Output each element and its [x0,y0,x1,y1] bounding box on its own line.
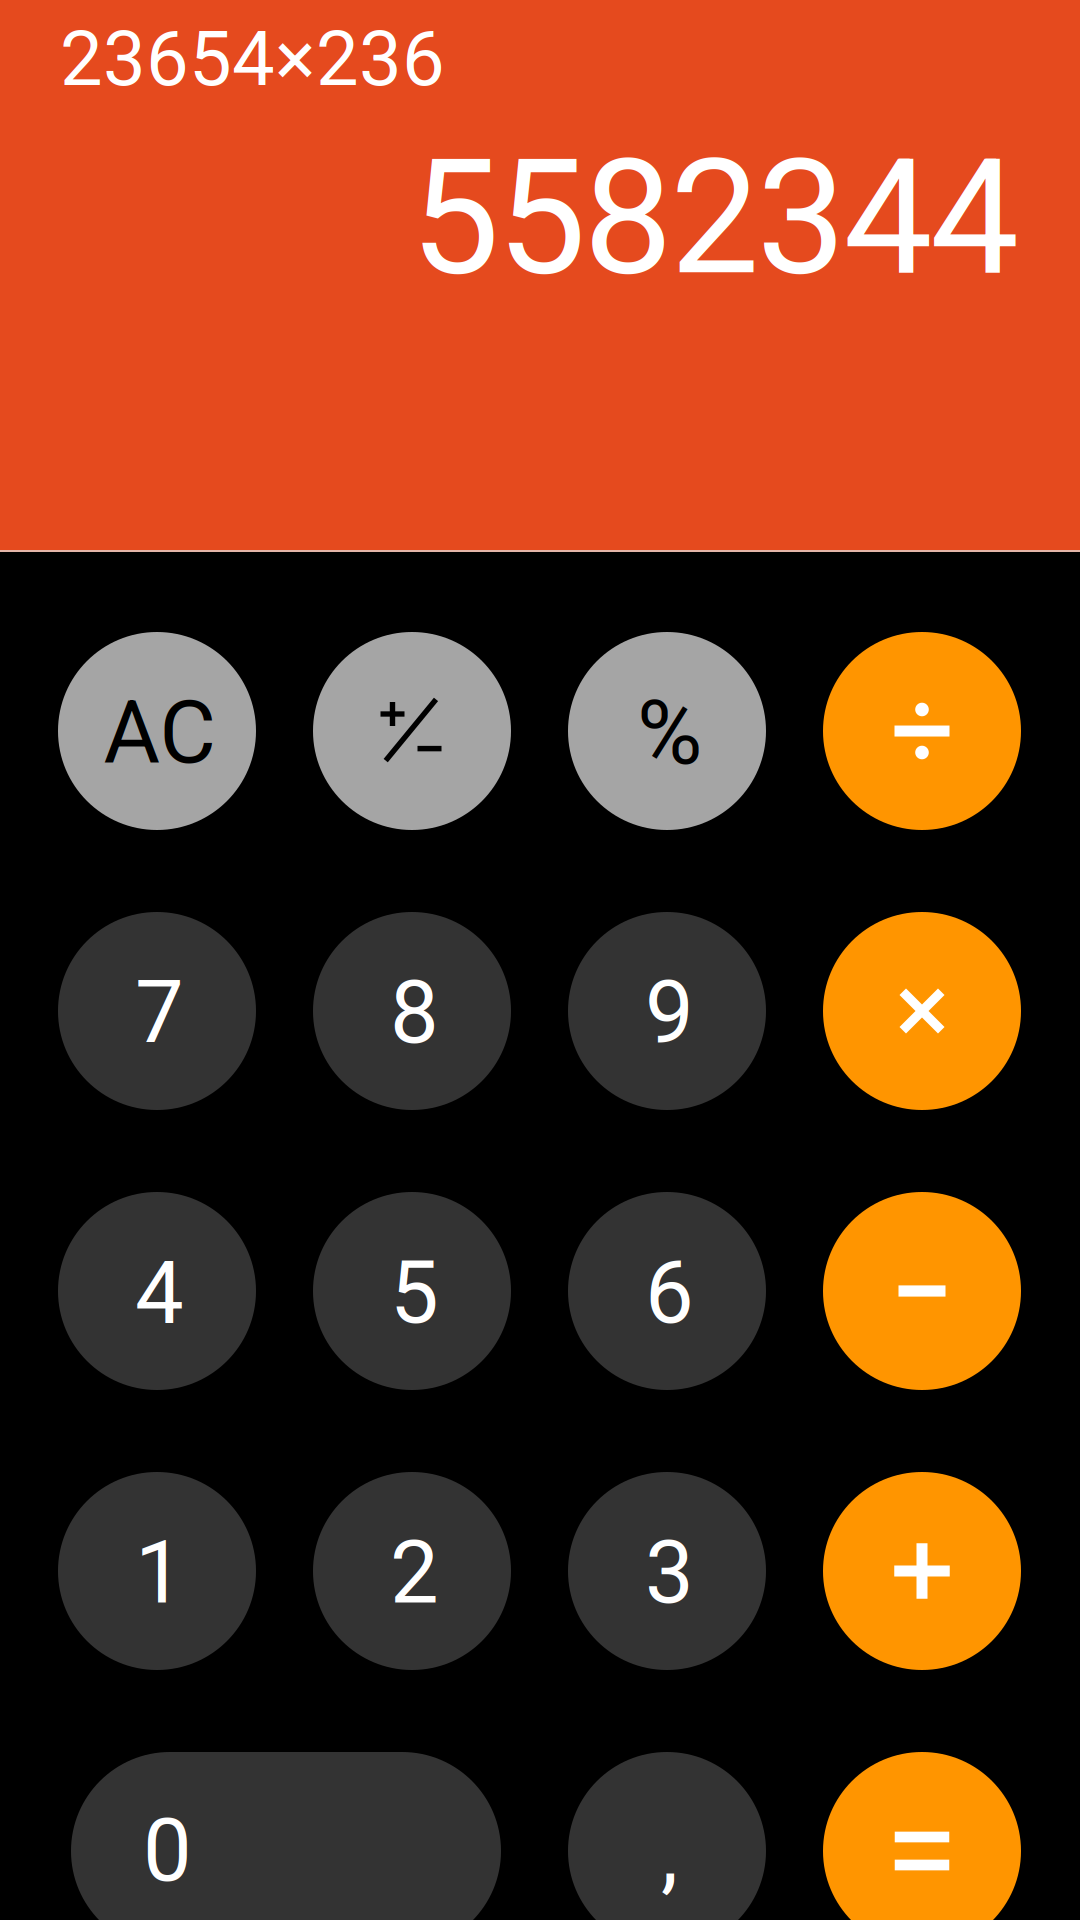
staticText: 2 [390,1522,439,1624]
button[interactable]: Add [823,1472,1021,1670]
button[interactable]: 3 [568,1472,766,1670]
button[interactable]: Toggle sign [313,632,511,830]
button[interactable]: AC [58,632,256,830]
staticText: 9 [645,962,694,1064]
staticText: 4 [135,1242,184,1344]
button[interactable]: % [568,632,766,830]
staticText: 5 [390,1242,439,1344]
staticText: 0 [143,1800,192,1902]
button[interactable]: , [568,1752,766,1920]
staticText: 5582344 [410,125,1019,311]
button[interactable]: 6 [568,1192,766,1390]
staticText: , [661,1802,678,1904]
button[interactable]: Subtract [823,1192,1021,1390]
button[interactable]: 4 [58,1192,256,1390]
button[interactable]: 2 [313,1472,511,1670]
staticText: 7 [135,962,184,1064]
button[interactable]: 7 [58,912,256,1110]
staticText: 23654×236 [60,14,445,104]
button[interactable]: 5 [313,1192,511,1390]
button[interactable]: Divide [823,632,1021,830]
staticText: 8 [390,962,439,1064]
button[interactable]: 1 [58,1472,256,1670]
staticText: % [637,681,702,785]
staticText: 1 [135,1522,184,1624]
staticText: AC [103,682,215,784]
staticText: 6 [645,1242,694,1344]
staticText: 3 [645,1522,694,1624]
button[interactable]: Equals [823,1752,1021,1920]
button[interactable]: 8 [313,912,511,1110]
button[interactable]: 9 [568,912,766,1110]
button[interactable]: 0 [71,1752,501,1920]
button[interactable]: Multiply [823,912,1021,1110]
